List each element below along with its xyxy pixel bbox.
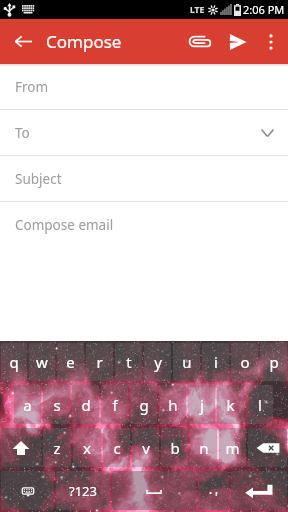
button[interactable]: x <box>73 428 101 467</box>
staticText: g <box>139 395 149 415</box>
button[interactable]: r <box>86 343 113 381</box>
button[interactable]: j <box>188 385 215 424</box>
button[interactable]: Period <box>198 471 229 510</box>
button[interactable]: k <box>217 385 244 424</box>
staticText: h <box>168 395 178 415</box>
staticText: l <box>258 395 262 415</box>
button[interactable]: t <box>115 343 142 381</box>
staticText: e <box>66 352 75 372</box>
staticText: j <box>200 395 204 415</box>
button[interactable]: h <box>159 385 186 424</box>
staticText: ?123 <box>69 482 97 500</box>
button[interactable]: y <box>144 343 171 381</box>
staticText: z <box>53 438 61 458</box>
button[interactable]: Change keyboard <box>1 471 54 510</box>
button[interactable]: q <box>1 343 27 381</box>
button[interactable]: d <box>72 385 99 424</box>
button[interactable]: i <box>202 343 229 381</box>
staticText: u <box>182 352 192 372</box>
staticText: i <box>214 352 218 372</box>
staticText: y <box>154 352 162 372</box>
button[interactable]: Compose email <box>0 202 288 247</box>
button[interactable]: n <box>190 428 217 467</box>
button[interactable]: u <box>173 343 200 381</box>
staticText: 2:06 PM <box>243 2 285 17</box>
button[interactable]: m <box>219 428 246 467</box>
staticText: c <box>113 438 121 458</box>
staticText: v <box>142 438 150 458</box>
button[interactable]: Enter <box>231 471 287 510</box>
button[interactable]: Shift <box>1 428 41 467</box>
button[interactable]: b <box>161 428 188 467</box>
button[interactable]: v <box>132 428 159 467</box>
button[interactable]: e <box>57 343 84 381</box>
staticText: LTE <box>190 4 205 16</box>
staticText: w <box>36 352 48 372</box>
staticText: From <box>15 78 49 96</box>
staticText: p <box>269 352 279 372</box>
staticText: Compose <box>46 30 122 53</box>
button[interactable]: From <box>0 64 288 110</box>
button[interactable]: Navigate up <box>0 19 46 64</box>
button[interactable]: z <box>43 428 71 467</box>
button[interactable]: a <box>14 385 41 424</box>
staticText: Compose email <box>15 216 114 234</box>
button[interactable]: p <box>260 343 287 381</box>
button[interactable]: To <box>0 110 288 156</box>
button[interactable]: Attach file <box>178 19 218 64</box>
button[interactable]: o <box>231 343 258 381</box>
staticText: r <box>96 352 103 372</box>
button[interactable]: w <box>29 343 55 381</box>
button[interactable]: Space <box>112 471 196 510</box>
staticText: k <box>226 395 235 415</box>
staticText: d <box>81 395 91 415</box>
button[interactable]: f <box>101 385 128 424</box>
button[interactable]: Subject <box>0 156 288 202</box>
button[interactable]: c <box>103 428 130 467</box>
button[interactable]: ?123 <box>56 471 110 510</box>
button[interactable]: Backspace <box>248 428 287 467</box>
button[interactable]: More options <box>256 19 286 64</box>
button[interactable]: s <box>43 385 70 424</box>
button[interactable]: g <box>130 385 157 424</box>
staticText: Subject <box>15 170 62 188</box>
staticText: a <box>23 395 32 415</box>
staticText: n <box>199 438 209 458</box>
staticText: f <box>112 395 118 415</box>
staticText: x <box>83 438 91 458</box>
button[interactable]: l <box>246 385 273 424</box>
staticText: s <box>53 395 61 415</box>
staticText: m <box>225 438 240 458</box>
staticText: o <box>240 352 250 372</box>
staticText: t <box>126 352 132 372</box>
staticText: b <box>170 438 180 458</box>
button[interactable]: Send <box>218 19 256 64</box>
staticText: To <box>15 124 30 142</box>
staticText: q <box>9 352 19 372</box>
